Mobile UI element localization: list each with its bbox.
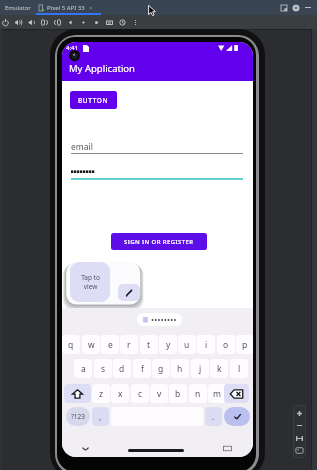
button[interactable]: d [113,359,131,378]
staticText: e [108,339,113,351]
button[interactable]: ?123 [66,407,90,426]
staticText: l [238,363,241,375]
staticText: b [175,388,181,400]
staticText: . [212,411,215,422]
button[interactable]: BUTTON [70,91,117,109]
button[interactable]: y [159,335,177,354]
button[interactable]: c [131,384,149,403]
staticText: s [101,363,106,375]
button[interactable]: n [189,384,207,403]
button[interactable]: q [62,335,80,354]
button[interactable]: Edit [118,284,140,301]
button[interactable]: Actual size [293,432,306,445]
staticText: h [177,363,183,375]
button[interactable]: Period [205,407,222,426]
staticText: a [81,363,86,375]
button[interactable]: Screenshot [293,444,306,457]
button[interactable] [137,313,182,326]
button[interactable]: Emulator control 7 [90,15,103,29]
button[interactable]: Split window [278,2,289,13]
button[interactable]: v [150,384,168,403]
button[interactable]: i [197,335,215,354]
button[interactable]: h [171,359,189,378]
staticText: z [99,388,103,400]
button[interactable]: w [82,335,100,354]
button[interactable]: a [74,359,92,378]
staticText: ?123 [71,412,85,421]
button[interactable]: k [210,359,228,378]
button[interactable]: u [178,335,196,354]
staticText: x [118,388,123,400]
button[interactable]: Backspace [224,384,249,403]
button[interactable]: x [111,384,129,403]
button[interactable]: b [169,384,187,403]
staticText: w [88,339,95,351]
button[interactable]: Zoom in [293,407,306,420]
button[interactable]: l [230,359,248,378]
button[interactable]: Shift [64,384,91,403]
button[interactable]: Emulator control 2 [25,15,38,29]
staticText: p [242,339,248,351]
button[interactable]: Emulator control 9 [116,15,129,29]
staticText: Pixel 5 API 33 [47,4,85,12]
button[interactable]: r [120,335,138,354]
staticText: Emulator [5,4,31,12]
button[interactable]: Emulator control 4 [51,15,64,29]
button[interactable]: Hide keyboard [80,443,91,454]
button[interactable]: Comma [92,407,109,426]
button[interactable]: j [191,359,209,378]
staticText: 4:41 [66,44,78,52]
button[interactable]: Settings [290,2,301,13]
button[interactable]: Emulator control 8 [103,15,116,29]
button[interactable]: Zoom out [293,419,306,432]
button[interactable]: Enter [224,407,250,426]
staticText: k [217,363,222,375]
staticText: d [119,363,125,375]
staticText: i [205,339,208,351]
button[interactable]: Tap to view [70,262,110,302]
button[interactable]: z [92,384,110,403]
staticText: Tap to view [81,273,100,291]
button[interactable]: Emulator control 6 [77,15,90,29]
staticText: m [213,388,221,400]
staticText: j [199,363,202,375]
button[interactable]: Minimize [302,2,313,13]
button[interactable]: g [152,359,170,378]
button[interactable]: Emulator control 1 [12,15,25,29]
staticText: v [157,388,162,400]
button[interactable]: SIGN IN OR REGISTER [111,233,207,250]
staticText: q [68,339,74,351]
button[interactable]: m [208,384,226,403]
button[interactable]: s [94,359,112,378]
button[interactable]: Emulator control 0 [0,15,12,29]
staticText: u [184,339,190,351]
staticText: g [158,363,164,375]
staticText: BUTTON [78,96,109,105]
staticText: c [138,388,143,400]
button[interactable]: o [217,335,235,354]
button[interactable]: Emulator control 3 [38,15,51,29]
staticText: email [71,141,93,153]
button[interactable]: Emulator control 10 [129,15,142,29]
button[interactable]: t [140,335,158,354]
button[interactable]: f [133,359,151,378]
staticText: My Application [69,62,135,75]
staticText: t [147,339,151,351]
staticText: f [141,363,144,375]
button[interactable]: Emulator control 5 [64,15,77,29]
button[interactable]: Switch keyboard [223,444,232,453]
button[interactable]: e [101,335,119,354]
staticText: n [195,388,201,400]
staticText: SIGN IN OR REGISTER [124,238,194,246]
button[interactable]: p [236,335,253,354]
staticText: r [127,339,131,351]
staticText: o [223,339,229,351]
staticText: y [166,339,171,351]
staticText: , [99,411,102,422]
staticText: × [89,4,93,12]
